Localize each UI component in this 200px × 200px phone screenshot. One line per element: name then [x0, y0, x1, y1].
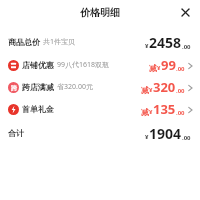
staticText: 99八代1618双瓶 — [57, 60, 110, 70]
staticText: 店铺优惠 — [22, 60, 54, 70]
staticText: 99 — [161, 56, 176, 74]
staticText: 跨店满减 — [22, 82, 54, 92]
staticText: ¥ — [149, 108, 153, 116]
staticText: .00 — [182, 43, 191, 51]
staticText: ¥ — [145, 42, 149, 50]
staticText: ¥ — [149, 86, 153, 94]
staticText: 省320.00元 — [57, 82, 93, 92]
staticText: 首单礼金 — [22, 104, 54, 114]
staticText: 2458 — [149, 33, 182, 52]
staticText: 商品总价 — [8, 37, 40, 47]
button[interactable]: 商品总价 — [0, 31, 200, 53]
staticText: .00 — [176, 109, 185, 117]
button[interactable]: 店铺优惠 — [0, 54, 200, 76]
staticText: 减 — [149, 63, 157, 73]
staticText: 减 — [141, 107, 149, 117]
button[interactable]: Close — [178, 5, 192, 19]
staticText: .00 — [182, 134, 191, 142]
button[interactable]: 跨 — [0, 76, 200, 98]
staticText: 320 — [153, 78, 176, 96]
staticText: ¥ — [145, 133, 149, 141]
staticText: 跨 — [11, 84, 17, 92]
staticText: 减 — [141, 85, 149, 95]
staticText: 合计 — [8, 128, 24, 138]
button[interactable]: 首单礼金 — [0, 98, 200, 120]
staticText: .00 — [176, 87, 185, 95]
staticText: 价格明细 — [80, 6, 120, 19]
staticText: .00 — [176, 65, 185, 73]
staticText: 共1件宝贝 — [43, 37, 76, 47]
staticText: 1904 — [149, 124, 182, 143]
staticText: 135 — [153, 100, 176, 118]
staticText: ¥ — [157, 64, 161, 72]
